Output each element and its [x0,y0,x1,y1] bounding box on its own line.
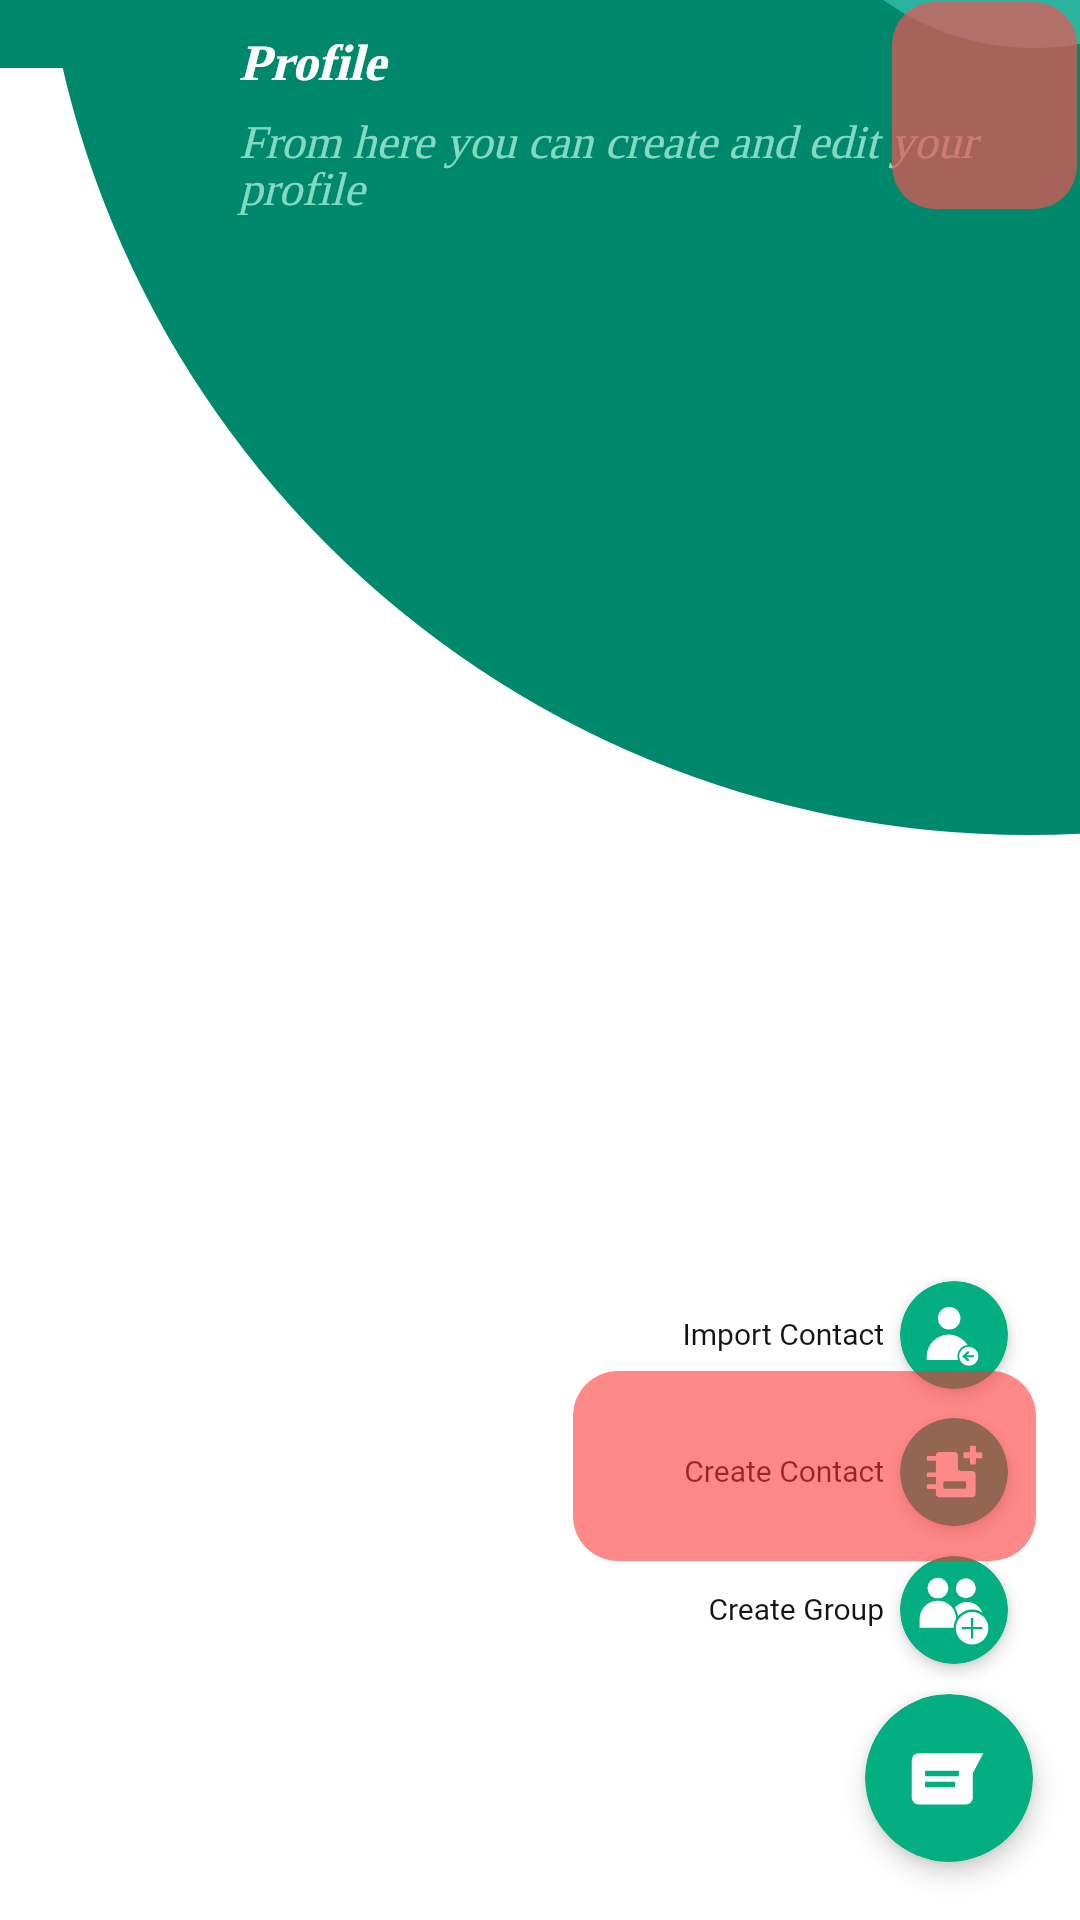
button[interactable]: New message [865,1694,1033,1862]
button[interactable]: Create Contact [900,1418,1008,1526]
staticText: From here you can create and edit your p… [239,116,1019,215]
staticText: Create Contact [684,1454,884,1489]
button[interactable]: Edit profile [892,2,1077,209]
button[interactable]: Create Group [900,1556,1008,1664]
staticText: Profile [239,35,386,91]
button[interactable]: Import Contact [601,1294,884,1374]
staticText: Create Group [708,1592,884,1627]
button[interactable]: Create Group [601,1569,884,1649]
button[interactable]: Import Contact [900,1281,1008,1389]
button[interactable]: Create Contact [601,1431,884,1511]
staticText: Import Contact [682,1317,884,1352]
